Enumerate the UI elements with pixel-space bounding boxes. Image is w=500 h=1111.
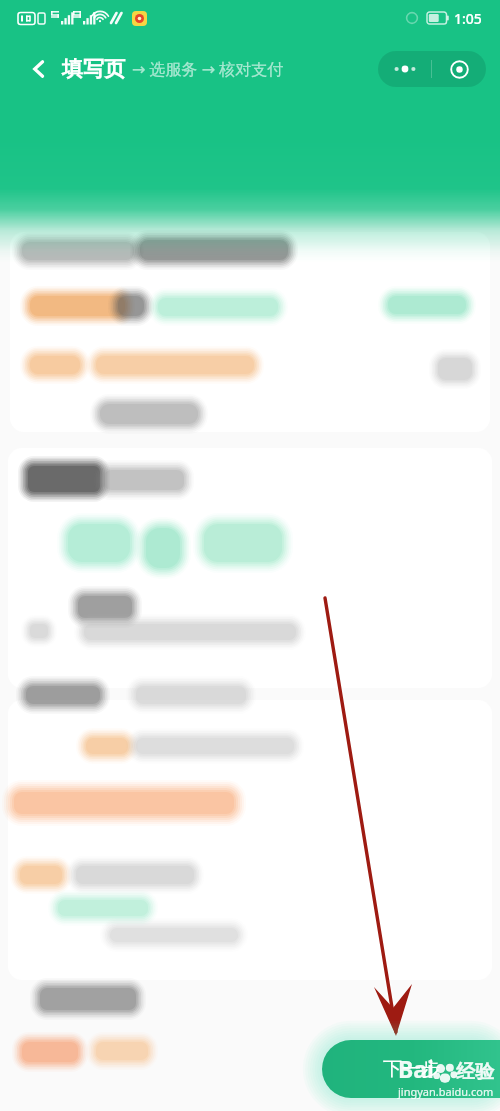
staticText: 下一步 [383,1057,440,1081]
staticText: 1:05 [454,9,482,28]
staticText: 经验 [456,1060,494,1084]
staticText: 填写页 [62,56,125,82]
button[interactable]: More options [378,51,431,87]
staticText: Bai [398,1053,434,1084]
button[interactable]: Close mini program [432,51,486,87]
button[interactable]: Back [22,52,56,86]
staticText: → 选服务 → 核对支付 [132,58,284,80]
staticText: jingyan.baidu.com [398,1084,494,1099]
button[interactable]: 下一步 [322,1040,500,1098]
